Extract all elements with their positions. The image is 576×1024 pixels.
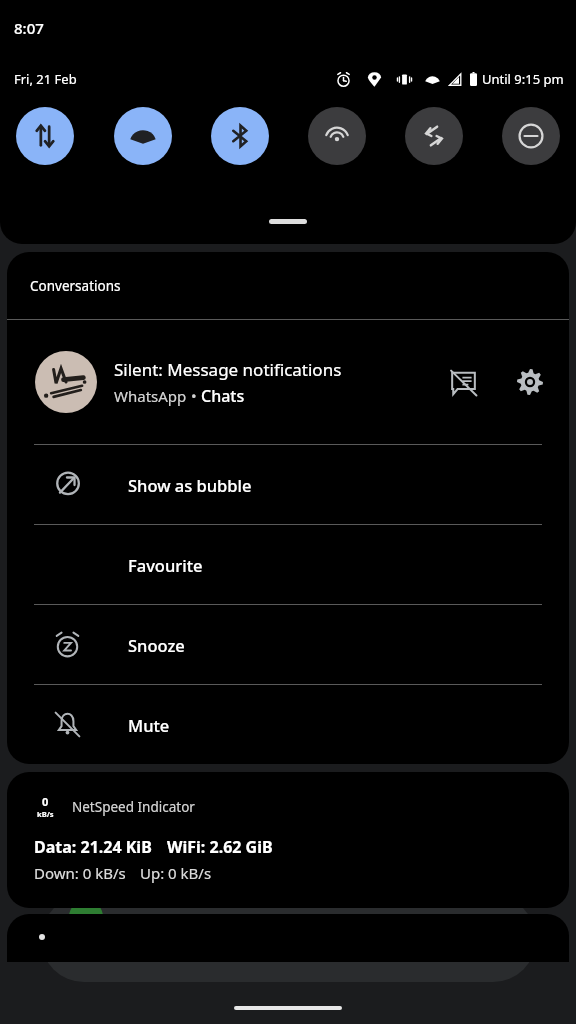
staticText: • [187,386,201,406]
staticText: NetSpeed Indicator [72,798,195,816]
button[interactable]: Toggle tile [405,107,463,165]
staticText: Down: 0 kB/s [34,863,126,883]
button[interactable]: Toggle tile [114,107,172,165]
button[interactable] [7,914,569,962]
button[interactable]: Expand quick settings [269,219,307,224]
staticText: Up: 0 kB/s [140,863,212,883]
staticText: 0 [42,794,49,809]
staticText: Until 9:15 pm [482,70,564,88]
staticText: Conversations [30,277,121,295]
staticText: kB/s [37,809,54,819]
staticText: Silent: Message notifications [114,358,342,381]
button[interactable]: Mute [7,685,569,764]
staticText: Show as bubble [128,474,252,496]
button[interactable]: Settings [508,360,552,404]
staticText: Fri, 21 Feb [14,70,77,88]
staticText: WhatsApp [114,386,187,406]
staticText: Chats [201,385,245,407]
button[interactable]: Show as bubble [7,445,569,524]
button[interactable]: Toggle tile [502,107,560,165]
staticText: WiFi: 2.62 GiB [167,836,273,858]
button[interactable]: Toggle tile [16,107,74,165]
staticText: Mute [128,714,170,736]
button[interactable]: Favourite [7,525,569,604]
button[interactable]: Silence notifications [441,360,485,404]
staticText: Data: 21.24 KiB [34,836,152,858]
staticText: Favourite [128,554,203,576]
button[interactable]: Toggle tile [211,107,269,165]
button[interactable]: Snooze [7,605,569,684]
button[interactable]: 0 [7,772,569,908]
button[interactable]: Silent: Message notifications [7,320,569,444]
button[interactable]: Toggle tile [308,107,366,165]
staticText: Snooze [128,634,185,656]
staticText: 8:07 [14,18,44,38]
